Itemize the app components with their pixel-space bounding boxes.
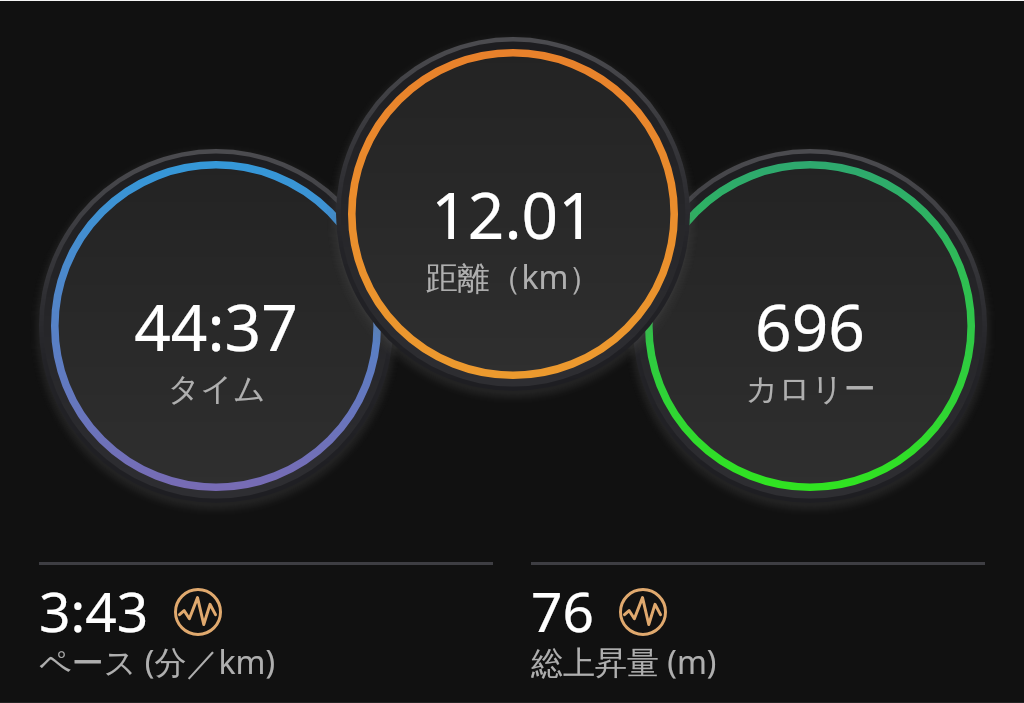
button[interactable]: 696 bbox=[645, 161, 975, 491]
staticText: 44:37 bbox=[134, 283, 298, 370]
staticText: 距離（km） bbox=[425, 255, 601, 299]
staticText: 12.01 bbox=[431, 171, 595, 258]
button[interactable]: 44:37 bbox=[51, 161, 381, 491]
staticText: 696 bbox=[755, 283, 865, 370]
staticText: 3:43 bbox=[39, 573, 149, 645]
button[interactable]: 76 bbox=[531, 562, 985, 687]
button[interactable]: 3:43 bbox=[39, 562, 493, 687]
other: Heart rate graph bbox=[174, 588, 222, 636]
staticText: カロリー bbox=[745, 369, 876, 409]
staticText: ペース (分／km) bbox=[39, 640, 276, 682]
button[interactable]: 12.01 bbox=[348, 49, 678, 379]
staticText: 総上昇量 (m) bbox=[531, 640, 717, 682]
staticText: タイム bbox=[167, 369, 266, 409]
other: Heart rate graph bbox=[619, 588, 667, 636]
staticText: 76 bbox=[531, 573, 594, 645]
